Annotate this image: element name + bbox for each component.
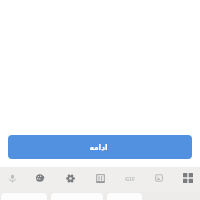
button[interactable]: Clipboard <box>89 167 111 189</box>
button[interactable]: Voice input <box>1 167 23 189</box>
button[interactable]: Settings <box>59 167 81 189</box>
button[interactable]: Stickers <box>29 167 51 189</box>
button[interactable]: Images <box>148 167 170 189</box>
button[interactable]: More options <box>177 167 199 189</box>
button[interactable]: ادامه <box>8 135 192 159</box>
staticText: GIF <box>125 175 135 183</box>
staticText: ادامه <box>89 143 108 152</box>
button[interactable]: GIF <box>118 167 140 189</box>
